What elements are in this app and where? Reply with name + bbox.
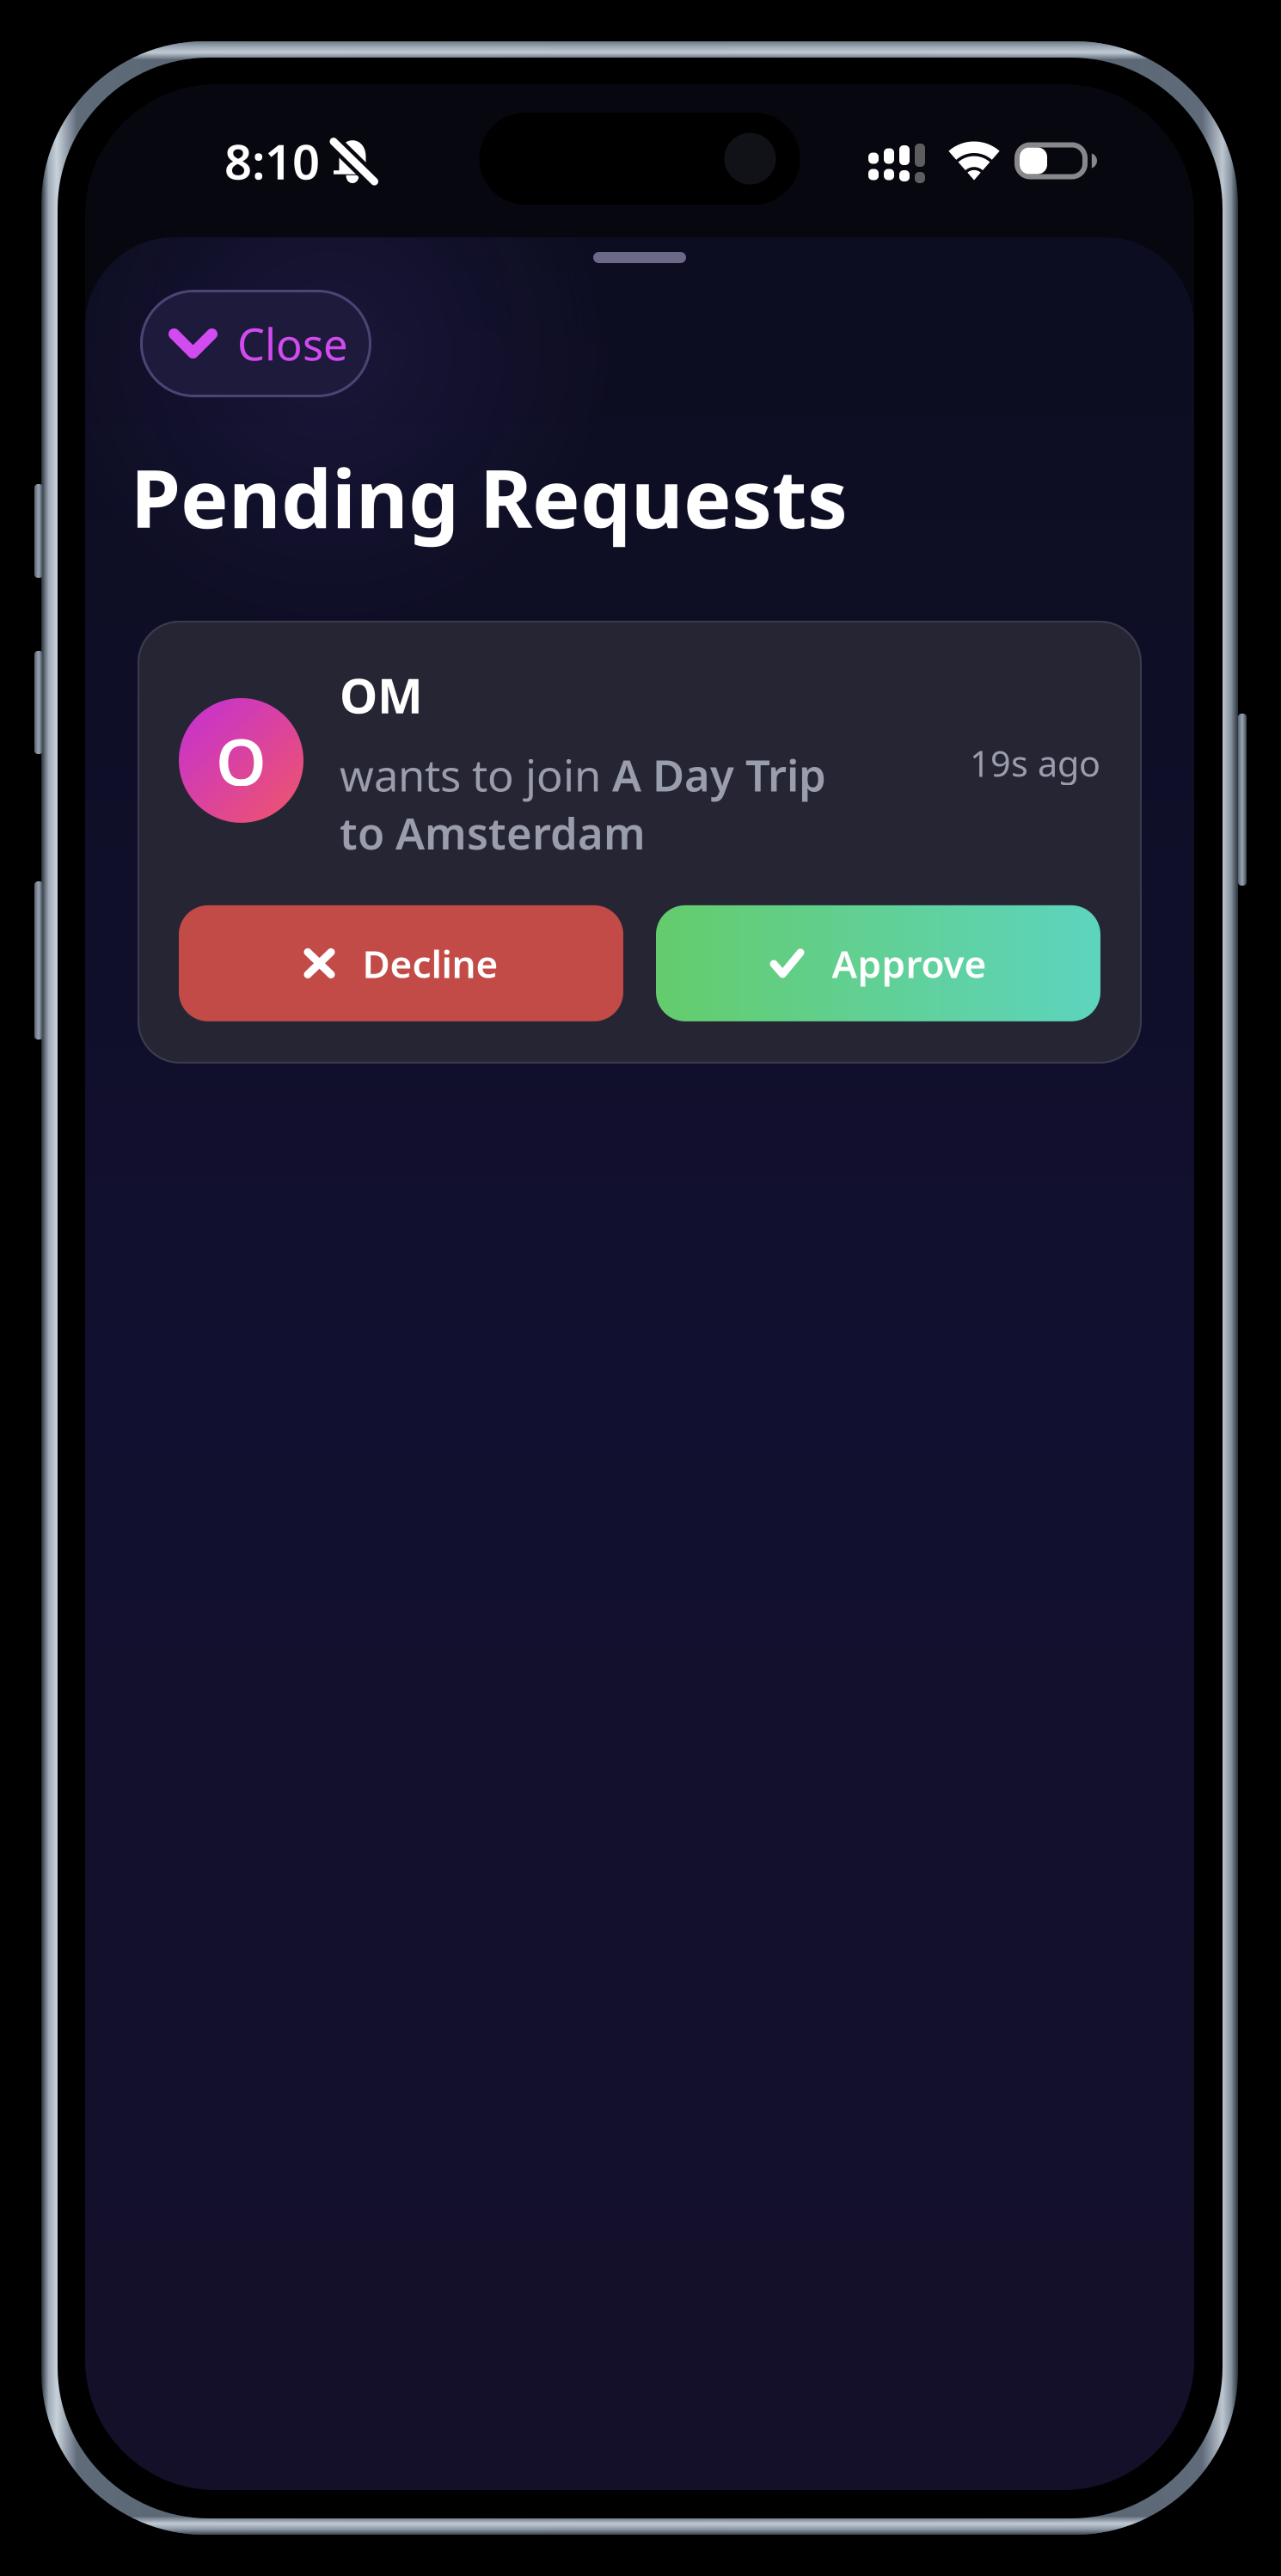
staticText: Close: [237, 315, 348, 372]
button[interactable]: Approve: [656, 905, 1100, 1021]
staticText: Approve: [832, 938, 987, 988]
staticText: Decline: [362, 938, 498, 988]
button[interactable]: Decline: [179, 905, 623, 1021]
staticText: wants to join A Day Trip to Amsterdam: [340, 746, 826, 861]
staticText: OM: [340, 663, 423, 727]
staticText: 8:10: [224, 129, 320, 193]
staticText: O: [216, 718, 267, 803]
button[interactable]: Close: [140, 290, 371, 397]
staticText: 19s ago: [970, 739, 1100, 787]
staticText: Pending Requests: [131, 444, 848, 550]
